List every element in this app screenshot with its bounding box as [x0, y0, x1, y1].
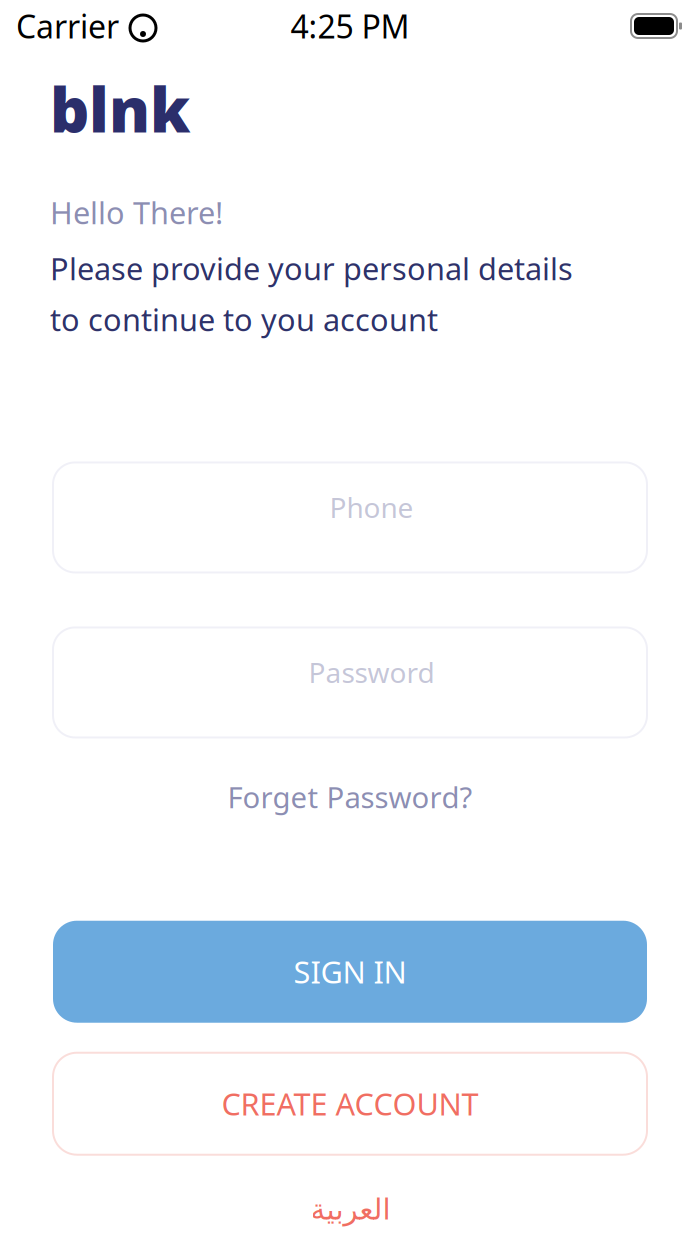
button[interactable]: العربية	[294, 1187, 406, 1232]
button[interactable]: SIGN IN	[53, 921, 647, 1023]
staticText: CREATE ACCOUNT	[221, 1083, 478, 1124]
button[interactable]: CREATE ACCOUNT	[53, 1053, 647, 1155]
staticText: Password	[308, 653, 434, 691]
staticText: to continue to you account	[50, 299, 438, 340]
staticText: Forget Password?	[227, 777, 472, 816]
button[interactable]: Phone	[53, 462, 647, 572]
button[interactable]: Forget Password?	[213, 767, 486, 826]
staticText: Hello There!	[50, 192, 223, 233]
staticText: 4:25 PM	[290, 5, 409, 47]
button[interactable]: Password	[53, 627, 647, 737]
staticText: SIGN IN	[293, 951, 406, 992]
staticText: العربية	[310, 1193, 390, 1226]
staticText: Phone	[329, 488, 413, 526]
staticText: blnk	[50, 68, 190, 149]
staticText: Please provide your personal details	[50, 248, 573, 289]
staticText: Carrier	[16, 5, 119, 47]
